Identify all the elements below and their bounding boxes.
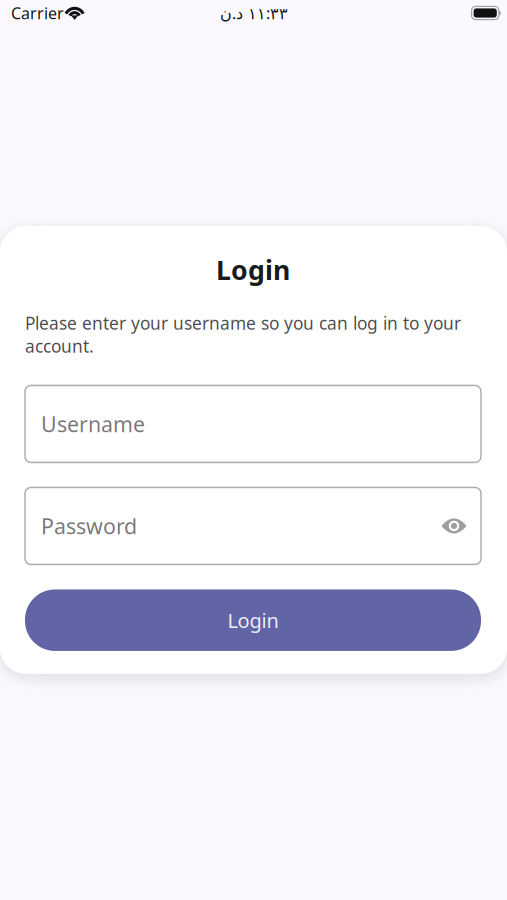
staticText: Carrier xyxy=(11,2,64,24)
button[interactable]: Login xyxy=(25,589,481,651)
staticText: ١١:٣٣ د.ن xyxy=(219,2,287,24)
button[interactable]: Password xyxy=(25,487,481,564)
staticText: Login xyxy=(227,607,278,633)
staticText: Password xyxy=(41,512,137,540)
staticText: Login xyxy=(216,252,290,287)
staticText: Please enter your username so you can lo… xyxy=(25,311,461,357)
staticText: Username xyxy=(41,410,145,438)
button[interactable]: Username xyxy=(25,385,481,462)
